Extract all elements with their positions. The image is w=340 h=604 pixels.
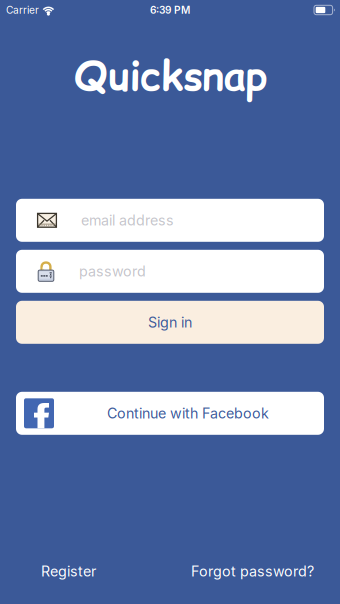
staticText: Carrier (6, 4, 39, 16)
button[interactable]: Register (41, 563, 96, 580)
button[interactable]: email address (16, 199, 324, 242)
staticText: Quicksnap (73, 48, 266, 104)
button[interactable]: Continue with Facebook (16, 392, 324, 435)
staticText: Forgot password? (191, 563, 314, 580)
staticText: Register (41, 563, 96, 580)
staticText: password (79, 263, 146, 280)
button[interactable]: password (16, 250, 324, 293)
staticText: 6:39 PM (150, 4, 190, 16)
button[interactable]: Sign in (16, 301, 324, 344)
staticText: email address (81, 212, 174, 229)
button[interactable]: Forgot password? (191, 563, 314, 580)
staticText: Sign in (148, 314, 192, 331)
staticText: Continue with Facebook (107, 405, 269, 422)
